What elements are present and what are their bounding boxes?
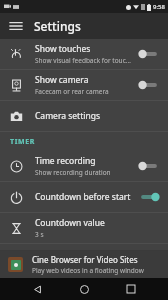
staticText: 3 s: [35, 230, 44, 239]
staticText: Show visual feedback for touches: [35, 56, 132, 65]
button[interactable]: Camera settings: [0, 101, 168, 131]
staticText: Countdown value: [35, 217, 105, 229]
button[interactable]: Countdown value: [0, 213, 168, 243]
button[interactable]: Toggle on: [138, 190, 160, 204]
staticText: Play web videos in a floating window: [32, 266, 144, 275]
staticText: Show touches: [35, 43, 91, 55]
button[interactable]: Show camera: [0, 70, 168, 100]
button[interactable]: Show touches: [0, 39, 168, 69]
button[interactable]: Cine Browser for Video Sites: [0, 251, 168, 278]
staticText: Settings: [34, 18, 81, 34]
button[interactable]: Countdown before start: [0, 182, 168, 212]
staticText: Time recording: [35, 155, 96, 167]
staticText: TIMER: [10, 137, 35, 147]
staticText: Show recording duration: [35, 168, 111, 177]
staticText: Facecam or rear camera: [35, 87, 109, 96]
button[interactable]: Toggle off: [138, 47, 160, 61]
staticText: Camera settings: [35, 110, 100, 122]
button[interactable]: Back: [27, 279, 47, 299]
button[interactable]: Toggle off: [138, 78, 160, 92]
staticText: OTHERS: [10, 249, 41, 259]
button[interactable]: Recent apps: [121, 279, 141, 299]
button[interactable]: Open navigation menu: [6, 16, 26, 36]
staticText: 9:58: [153, 3, 165, 11]
staticText: Show camera: [35, 74, 89, 86]
button[interactable]: Home: [74, 279, 94, 299]
button[interactable]: Toggle off: [138, 159, 160, 173]
button[interactable]: Output directory: [0, 263, 168, 278]
staticText: Countdown before start: [35, 191, 131, 203]
staticText: Cine Browser for Video Sites: [32, 254, 138, 265]
button[interactable]: Time recording: [0, 151, 168, 181]
staticText: Output directory: [35, 263, 102, 275]
